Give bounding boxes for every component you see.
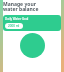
- staticText: 2000 ml: [8, 24, 20, 28]
- button[interactable]: Daily Water Goal: [3, 15, 61, 31]
- staticText: Manage your water balance: [3, 1, 39, 12]
- staticText: Daily Water Goal: [5, 17, 29, 21]
